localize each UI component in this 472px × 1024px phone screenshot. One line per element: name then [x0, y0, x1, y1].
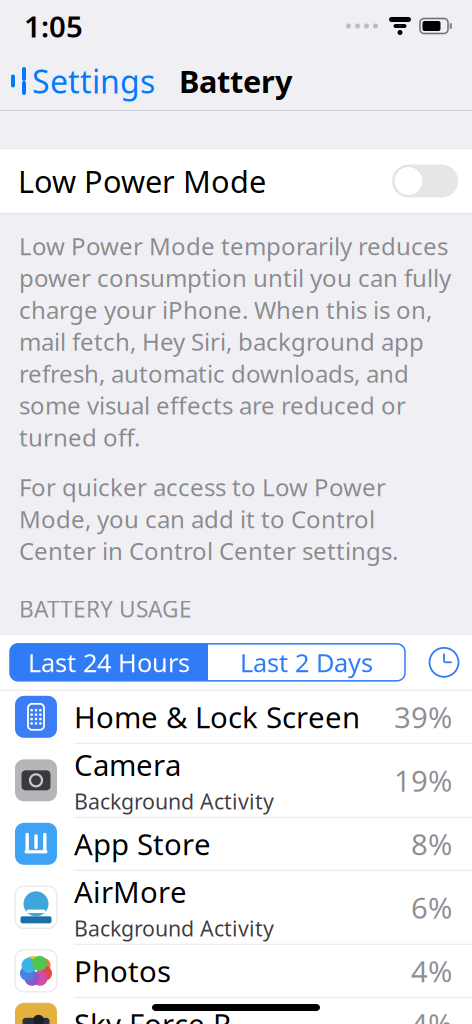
staticText: 39%	[394, 697, 452, 736]
staticText: Settings	[32, 60, 155, 102]
staticText: Home & Lock Screen	[74, 697, 360, 736]
staticText: BATTERY USAGE	[19, 594, 192, 624]
button[interactable]: Last 2 Days	[208, 644, 405, 681]
staticText: 4%	[411, 1004, 452, 1024]
button[interactable]: Settings	[0, 52, 155, 110]
staticText: App Store	[74, 824, 211, 863]
staticText: Low Power Mode	[18, 161, 266, 201]
staticText: 8%	[411, 824, 452, 863]
staticText: Photos	[74, 951, 171, 990]
staticText: Background Activity	[74, 787, 274, 815]
staticText: Sky Force R.	[74, 1004, 239, 1024]
button[interactable]: AirMore	[0, 871, 472, 945]
button[interactable]: Home & Lock Screen	[0, 691, 472, 744]
staticText: AirMore	[74, 872, 187, 911]
staticText: Low Power Mode temporarily reduces power…	[19, 230, 451, 453]
button[interactable]: Photos	[0, 945, 472, 998]
button[interactable]: Battery usage by time	[422, 640, 466, 684]
staticText: 6%	[411, 888, 452, 927]
button[interactable]: Sky Force R.	[0, 998, 472, 1024]
staticText: 19%	[394, 761, 452, 800]
staticText: Last 2 Days	[240, 645, 373, 679]
staticText: For quicker access to Low Power Mode, yo…	[19, 471, 398, 567]
button[interactable]: App Store	[0, 818, 472, 871]
staticText: 1:05	[24, 6, 83, 45]
button[interactable]: Last 24 Hours	[10, 644, 208, 681]
staticText: 4%	[411, 951, 452, 990]
button[interactable]: Low Power Mode	[392, 156, 472, 205]
staticText: Battery	[179, 61, 293, 101]
button[interactable]: Camera	[0, 744, 472, 818]
staticText: Background Activity	[74, 914, 274, 942]
staticText: Last 24 Hours	[28, 645, 190, 679]
staticText: Camera	[74, 745, 181, 784]
